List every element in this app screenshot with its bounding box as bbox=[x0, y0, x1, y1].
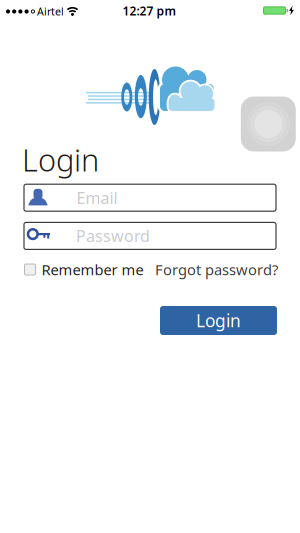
staticText: Login bbox=[196, 309, 241, 332]
button[interactable]: Forgot password? bbox=[155, 260, 278, 279]
button[interactable]: Remember me bbox=[24, 260, 143, 279]
button[interactable] bbox=[241, 96, 296, 151]
staticText: Remember me bbox=[41, 260, 143, 279]
button[interactable]: Login bbox=[160, 306, 277, 335]
button[interactable]: Email bbox=[24, 184, 276, 211]
staticText: Forgot password? bbox=[155, 260, 278, 279]
staticText: 12:27 pm bbox=[122, 3, 176, 19]
staticText: Password bbox=[76, 225, 150, 246]
button[interactable]: Password bbox=[24, 222, 276, 249]
staticText: Login bbox=[22, 139, 99, 180]
staticText: Email bbox=[76, 187, 117, 208]
staticText: Airtel bbox=[37, 4, 64, 18]
